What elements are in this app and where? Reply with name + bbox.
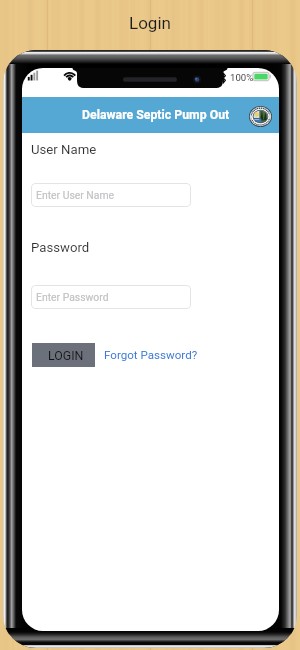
button[interactable]: Delaware state seal	[249, 106, 272, 127]
button[interactable]: Enter User Name	[31, 183, 191, 207]
staticText: Password	[31, 240, 90, 255]
button[interactable]: Enter Password	[31, 285, 191, 309]
staticText: Delaware Septic Pump Out	[82, 108, 230, 122]
staticText: Enter Password	[36, 291, 109, 303]
staticText: Forgot Password?	[104, 348, 198, 362]
button[interactable]: LOGIN	[32, 343, 95, 367]
staticText: 100%	[230, 72, 254, 83]
staticText: Login	[129, 13, 171, 33]
button[interactable]: Forgot Password?	[104, 348, 198, 362]
staticText: User Name	[31, 142, 97, 157]
staticText: Enter User Name	[36, 189, 115, 201]
staticText: LOGIN	[48, 348, 84, 363]
